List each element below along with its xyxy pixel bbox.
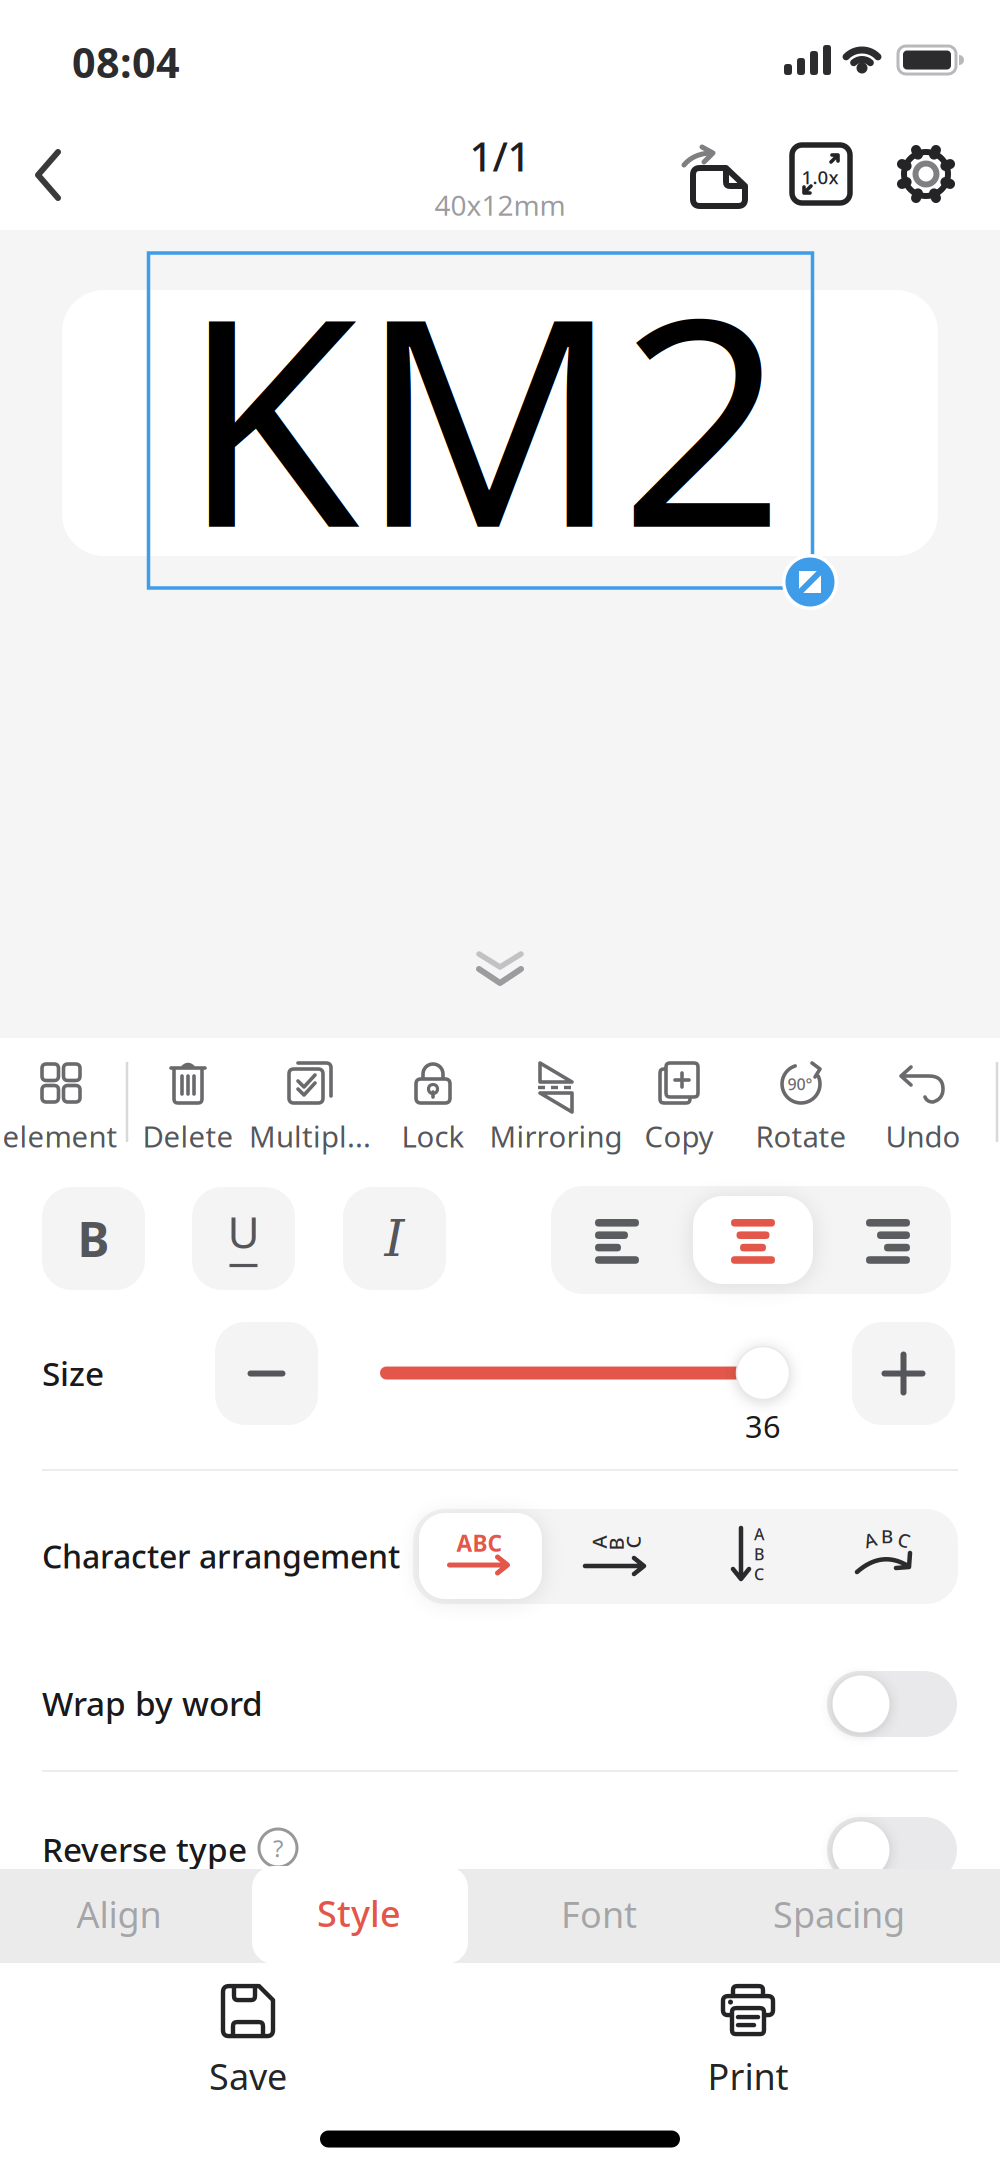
- staticText: KM2: [181, 224, 785, 606]
- staticText: Multipl...: [249, 1116, 371, 1155]
- staticText: Print: [707, 2052, 788, 2100]
- staticText: Style: [317, 1889, 401, 1937]
- button[interactable]: Undo: [843, 1041, 1000, 1153]
- button[interactable]: Style: [251, 1865, 467, 1961]
- button[interactable]: Settings: [888, 136, 964, 212]
- staticText: A: [754, 1523, 764, 1545]
- staticText: B: [609, 1531, 622, 1557]
- button[interactable]: Align: [19, 1869, 219, 1959]
- button[interactable]: Back: [18, 140, 78, 210]
- staticText: Lock: [401, 1116, 464, 1155]
- button[interactable]: element: [1, 1041, 121, 1153]
- button[interactable]: Italic: [343, 1187, 446, 1290]
- button[interactable]: Spacing: [729, 1869, 949, 1959]
- staticText: A: [864, 1528, 876, 1552]
- button[interactable]: Align right: [865, 1217, 911, 1263]
- staticText: A: [592, 1529, 605, 1555]
- button[interactable]: About reverse type: [257, 1827, 299, 1869]
- button[interactable]: Lock: [353, 1041, 513, 1153]
- button[interactable]: Underline: [192, 1187, 295, 1290]
- button[interactable]: Print: [658, 1982, 838, 2102]
- staticText: C: [898, 1528, 910, 1552]
- staticText: 1/1: [469, 129, 530, 182]
- staticText: B: [77, 1207, 109, 1270]
- button[interactable]: Rotated text: [577, 1526, 657, 1586]
- button[interactable]: Bold: [42, 1187, 145, 1290]
- staticText: Copy: [644, 1116, 713, 1155]
- button[interactable]: Preview scale: [783, 136, 859, 212]
- button[interactable]: Multipl...: [230, 1041, 390, 1153]
- button[interactable]: Horizontal text: [440, 1526, 520, 1586]
- staticText: ABC: [456, 1528, 502, 1558]
- button[interactable]: Vertical text: [713, 1526, 793, 1586]
- button[interactable]: Align left: [594, 1217, 640, 1263]
- staticText: Size: [42, 1351, 104, 1395]
- button[interactable]: Delete: [108, 1041, 268, 1153]
- button[interactable]: Decrease size: [215, 1322, 318, 1425]
- staticText: Align: [76, 1890, 161, 1938]
- staticText: 1.0x: [801, 165, 838, 189]
- staticText: Reverse type: [42, 1827, 247, 1871]
- button[interactable]: Collapse: [475, 951, 525, 987]
- staticText: 90°: [787, 1073, 812, 1095]
- staticText: Mirroring: [489, 1116, 622, 1155]
- staticText: Character arrangement: [42, 1535, 400, 1577]
- button[interactable]: Mirroring: [476, 1041, 636, 1153]
- button[interactable]: Curved text: [848, 1526, 928, 1586]
- staticText: Rotate: [755, 1116, 846, 1155]
- staticText: C: [626, 1529, 639, 1555]
- button[interactable]: Save: [158, 1982, 338, 2102]
- button[interactable]: Toggle: [827, 1817, 957, 1883]
- button[interactable]: Align center: [730, 1217, 776, 1263]
- button[interactable]: Size slider: [380, 1342, 800, 1404]
- staticText: Font: [561, 1890, 637, 1938]
- staticText: Spacing: [773, 1890, 905, 1938]
- staticText: 08:04: [72, 35, 180, 89]
- staticText: C: [754, 1563, 764, 1585]
- staticText: 36: [745, 1406, 781, 1446]
- staticText: Undo: [885, 1116, 960, 1155]
- staticText: element: [2, 1116, 117, 1155]
- button[interactable]: Increase size: [852, 1322, 955, 1425]
- staticText: Delete: [142, 1116, 233, 1155]
- button[interactable]: Export: [676, 138, 752, 214]
- staticText: U: [227, 1202, 259, 1261]
- button[interactable]: Font: [499, 1869, 699, 1959]
- staticText: Wrap by word: [42, 1681, 263, 1725]
- button[interactable]: Copy: [599, 1041, 759, 1153]
- button[interactable]: Resize: [782, 554, 838, 610]
- button[interactable]: Toggle: [827, 1671, 957, 1737]
- button[interactable]: 90°: [721, 1041, 881, 1153]
- staticText: I: [384, 1209, 404, 1268]
- staticText: B: [754, 1543, 764, 1565]
- staticText: ?: [273, 1832, 283, 1864]
- staticText: Save: [209, 2052, 287, 2100]
- staticText: B: [881, 1524, 893, 1548]
- staticText: 40x12mm: [434, 186, 565, 224]
